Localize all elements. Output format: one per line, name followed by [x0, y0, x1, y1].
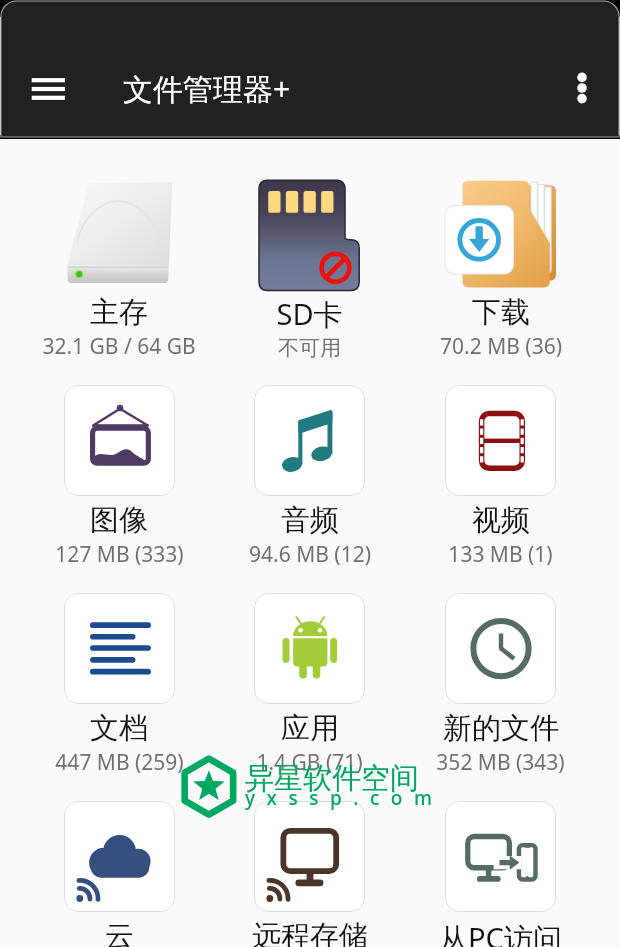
staticText: 下载 — [472, 294, 530, 331]
staticText: 文件管理器+ — [123, 68, 291, 109]
button[interactable]: 云 — [24, 801, 214, 947]
staticText: 远程存储 — [252, 918, 368, 947]
staticText: 133 MB (1) — [448, 540, 553, 569]
staticText: 32.1 GB / 64 GB — [42, 332, 196, 361]
staticText: 应用 — [281, 710, 339, 747]
button[interactable]: 主存 — [24, 177, 214, 385]
staticText: 云 — [105, 918, 134, 947]
staticText: 1.4 GB (71) — [256, 748, 363, 777]
button[interactable]: 新的文件 — [405, 593, 596, 801]
button[interactable]: 远程存储 — [214, 801, 405, 947]
staticText: 新的文件 — [443, 710, 559, 747]
button[interactable]: Menu — [16, 57, 80, 121]
staticText: 音频 — [281, 502, 339, 539]
staticText: 异星软件空间 — [245, 760, 419, 797]
staticText: 主存 — [90, 294, 148, 331]
staticText: 文档 — [90, 710, 148, 747]
button[interactable]: SD卡 — [214, 177, 405, 385]
staticText: 70.2 MB (36) — [440, 332, 562, 361]
staticText: 图像 — [90, 502, 148, 539]
staticText: SD卡 — [276, 294, 343, 334]
staticText: 352 MB (343) — [436, 748, 565, 777]
button[interactable]: 音频 — [214, 385, 405, 593]
button[interactable]: 下载 — [405, 177, 596, 385]
button[interactable]: 从PC访问 — [405, 801, 596, 947]
button[interactable]: More options — [552, 56, 612, 120]
staticText: 视频 — [472, 502, 530, 539]
button[interactable]: 应用 — [214, 593, 405, 801]
staticText: 94.6 MB (12) — [249, 540, 371, 569]
button[interactable]: 视频 — [405, 385, 596, 593]
button[interactable]: 图像 — [24, 385, 214, 593]
staticText: y x s s p . c o m — [245, 785, 436, 811]
staticText: 447 MB (259) — [55, 748, 184, 777]
button[interactable]: 文档 — [24, 593, 214, 801]
staticText: 127 MB (333) — [55, 540, 184, 569]
staticText: 不可用 — [278, 335, 341, 361]
staticText: 从PC访问 — [439, 918, 562, 947]
